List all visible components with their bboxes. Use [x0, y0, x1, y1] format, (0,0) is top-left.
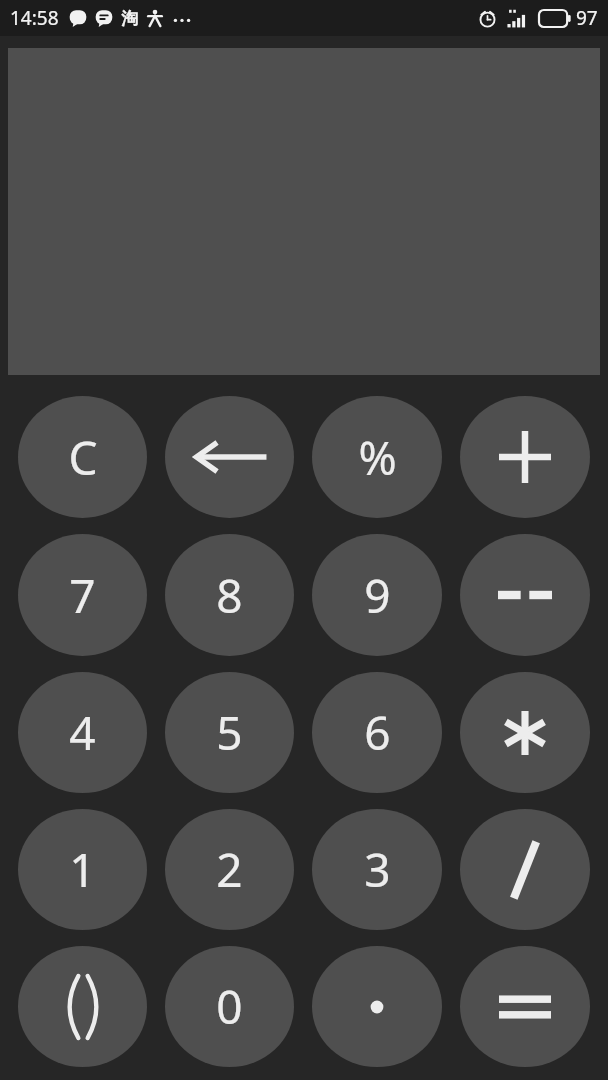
staticText: 7: [69, 564, 96, 627]
staticText: 0: [216, 975, 243, 1038]
button[interactable]: C: [18, 396, 147, 518]
staticText: 淘: [121, 8, 138, 29]
staticText: 3: [364, 838, 391, 901]
button[interactable]: Parentheses: [18, 946, 147, 1067]
staticText: C: [68, 426, 98, 489]
button[interactable]: Plus: [460, 396, 590, 518]
staticText: 5: [216, 701, 243, 764]
button[interactable]: %: [312, 396, 442, 518]
button[interactable]: Equals: [460, 946, 590, 1067]
button[interactable]: 3: [312, 809, 442, 930]
button[interactable]: 4: [18, 672, 147, 793]
button[interactable]: 8: [165, 534, 294, 656]
button[interactable]: 6: [312, 672, 442, 793]
button[interactable]: Multiply: [460, 672, 590, 793]
staticText: 8: [216, 564, 243, 627]
staticText: 1: [69, 838, 96, 901]
button[interactable]: 5: [165, 672, 294, 793]
button[interactable]: Decimal point: [312, 946, 442, 1067]
button[interactable]: Minus: [460, 534, 590, 656]
button[interactable]: 2: [165, 809, 294, 930]
button[interactable]: 1: [18, 809, 147, 930]
staticText: 97: [576, 5, 598, 31]
button[interactable]: 0: [165, 946, 294, 1067]
button[interactable]: 9: [312, 534, 442, 656]
staticText: 14:58: [10, 5, 59, 31]
staticText: 2: [216, 838, 243, 901]
button[interactable]: Backspace: [165, 396, 294, 518]
staticText: %: [358, 426, 397, 489]
button[interactable]: 7: [18, 534, 147, 656]
staticText: 6: [364, 701, 391, 764]
button[interactable]: Divide: [460, 809, 590, 930]
staticText: 9: [364, 564, 391, 627]
staticText: 4: [69, 701, 96, 764]
